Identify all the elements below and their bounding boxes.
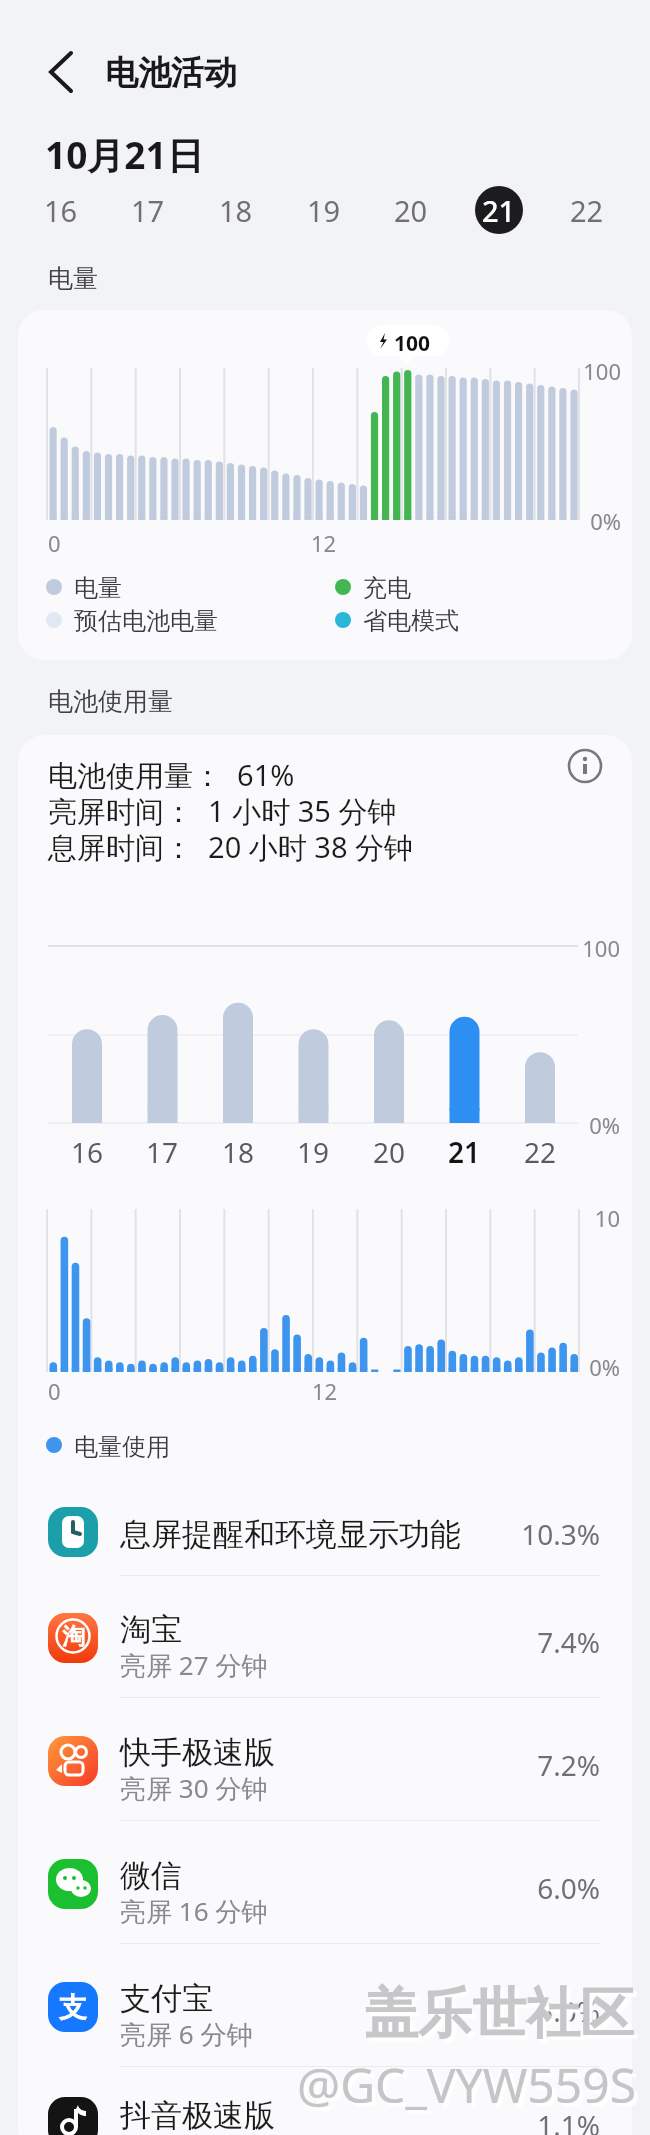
button[interactable]: [18, 1476, 632, 1588]
staticText: 12: [312, 1376, 338, 1406]
staticText: 省电模式: [363, 606, 459, 636]
staticText: 17: [131, 191, 165, 230]
staticText: @GC_VYW559S: [297, 2052, 637, 2117]
staticText: 21: [482, 191, 516, 230]
staticText: 100: [501, 356, 621, 386]
staticText: 0: [48, 528, 61, 558]
staticText: 盖乐世社区: [364, 1980, 634, 2048]
staticText: 18: [219, 191, 253, 230]
staticText: 息屏提醒和环境显示功能: [120, 1515, 461, 1554]
staticText: 19: [283, 1133, 343, 1171]
button[interactable]: 20: [381, 190, 441, 230]
staticText: 淘: [62, 1622, 85, 1651]
staticText: 20: [359, 1133, 419, 1171]
staticText: 16: [44, 191, 78, 230]
button[interactable]: 21: [475, 186, 523, 234]
staticText: 电量使用: [74, 1432, 170, 1462]
staticText: 电量: [74, 573, 122, 603]
staticText: 淘宝: [120, 1610, 182, 1649]
staticText: 22: [510, 1133, 570, 1171]
button[interactable]: [18, 1828, 632, 1940]
staticText: 息屏时间： 20 小时 38 分钟: [48, 827, 414, 867]
staticText: 快手极速版: [120, 1733, 275, 1772]
button[interactable]: 18: [206, 190, 266, 230]
staticText: 0%: [470, 1352, 620, 1382]
staticText: 22: [570, 191, 604, 230]
button[interactable]: [18, 1705, 632, 1817]
staticText: 16: [57, 1133, 117, 1171]
button[interactable]: 17: [118, 190, 178, 230]
staticText: 预估电池电量: [74, 606, 218, 636]
staticText: 电池使用量： 61%: [48, 755, 295, 795]
staticText: 支: [59, 1990, 87, 2025]
staticText: 亮屏 27 分钟: [120, 1647, 268, 1683]
staticText: 20: [394, 191, 428, 230]
button[interactable]: [18, 1582, 632, 1694]
button[interactable]: 16: [31, 190, 91, 230]
staticText: 0: [48, 1376, 61, 1406]
staticText: 6.0%: [440, 1869, 600, 1907]
staticText: 0%: [470, 1110, 620, 1140]
staticText: 10: [470, 1203, 620, 1233]
staticText: 支付宝: [120, 1979, 213, 2018]
staticText: 100: [470, 933, 620, 963]
staticText: 0%: [501, 506, 621, 536]
button[interactable]: 22: [557, 190, 617, 230]
button[interactable]: [563, 744, 607, 788]
staticText: 亮屏 6 分钟: [120, 2016, 253, 2052]
staticText: 亮屏 16 分钟: [120, 1893, 268, 1929]
staticText: 7.2%: [440, 1746, 600, 1784]
staticText: 抖音极速版: [120, 2096, 275, 2135]
staticText: 电池使用量: [48, 686, 173, 717]
staticText: 19: [307, 191, 341, 230]
staticText: 电池活动: [105, 52, 237, 94]
button[interactable]: 19: [294, 190, 354, 230]
staticText: 5.0%: [440, 1992, 600, 2030]
staticText: 7.4%: [440, 1623, 600, 1661]
staticText: 18: [208, 1133, 268, 1171]
button[interactable]: [30, 46, 82, 98]
staticText: 10.3%: [440, 1515, 600, 1553]
staticText: 10月21日: [45, 129, 204, 180]
staticText: 充电: [363, 573, 411, 603]
staticText: 电量: [48, 263, 98, 294]
button[interactable]: [18, 2066, 632, 2135]
staticText: 17: [132, 1133, 192, 1171]
staticText: 1.1%: [440, 2106, 600, 2135]
staticText: 微信: [120, 1856, 182, 1895]
staticText: 亮屏时间： 1 小时 35 分钟: [48, 791, 397, 831]
button[interactable]: [18, 1951, 632, 2063]
staticText: 亮屏 30 分钟: [120, 1770, 268, 1806]
staticText: 100: [394, 329, 431, 358]
staticText: 12: [311, 528, 337, 558]
staticText: 21: [434, 1133, 494, 1171]
